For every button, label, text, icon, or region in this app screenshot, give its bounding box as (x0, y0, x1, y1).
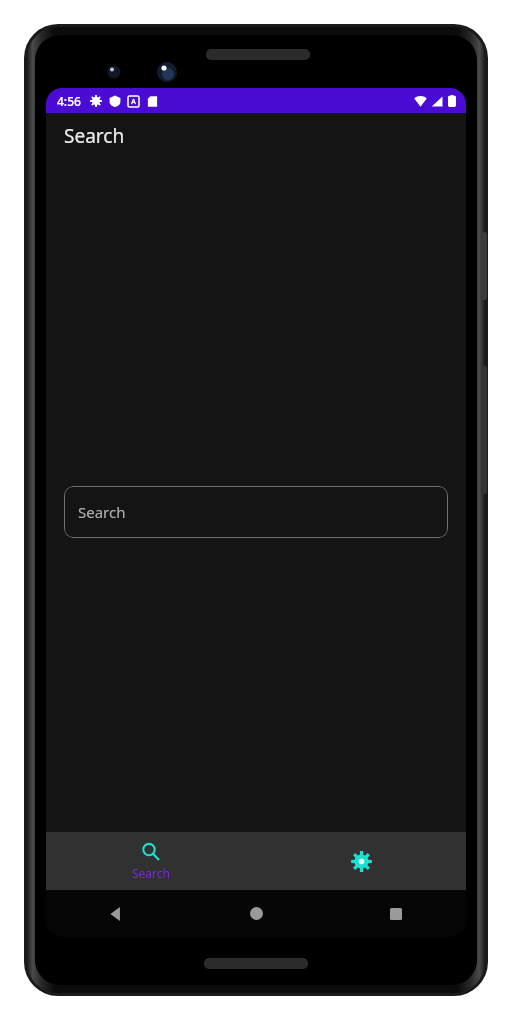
staticText: Search (78, 502, 126, 522)
button[interactable]: Search (64, 486, 448, 538)
button[interactable]: Recent apps (326, 890, 466, 937)
staticText: Search (132, 865, 170, 881)
button[interactable]: Home (186, 890, 326, 937)
button[interactable]: Settings (256, 832, 466, 890)
staticText: Search (64, 123, 125, 149)
staticText: 4:56 (57, 93, 81, 109)
button[interactable]: Back (46, 890, 186, 937)
button[interactable]: Search (46, 832, 256, 890)
